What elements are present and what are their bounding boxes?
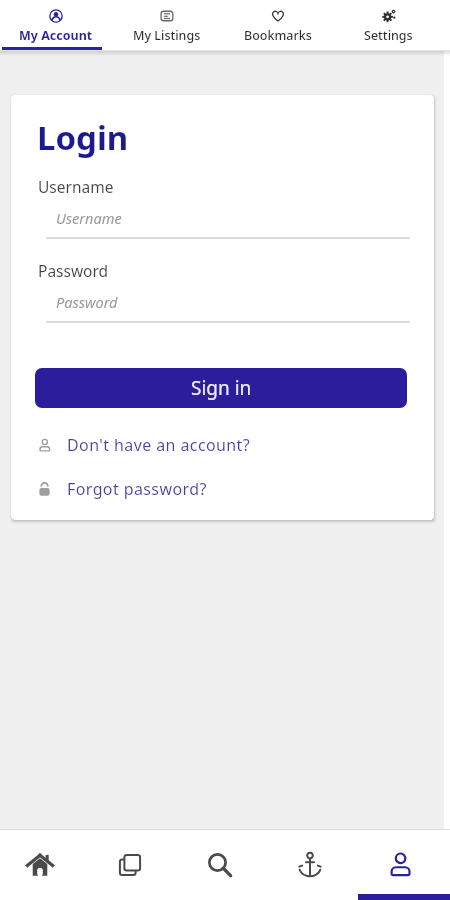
staticText: Bookmarks bbox=[244, 27, 312, 44]
staticText: Password bbox=[56, 292, 118, 312]
staticText: Don't have an account? bbox=[67, 434, 251, 456]
staticText: Username bbox=[38, 176, 114, 197]
button[interactable] bbox=[355, 830, 445, 900]
staticText: Sign in bbox=[191, 375, 252, 401]
button[interactable]: Forgot password? bbox=[37, 478, 207, 500]
button[interactable]: Settings bbox=[333, 0, 444, 51]
button[interactable]: Password bbox=[46, 282, 410, 323]
staticText: Settings bbox=[364, 27, 413, 44]
button[interactable] bbox=[0, 830, 85, 900]
button[interactable]: Username bbox=[46, 198, 410, 239]
button[interactable]: My Account bbox=[0, 0, 111, 51]
button[interactable]: Sign in bbox=[35, 368, 407, 408]
button[interactable]: Bookmarks bbox=[222, 0, 333, 51]
staticText: Password bbox=[38, 260, 109, 281]
button[interactable] bbox=[175, 830, 265, 900]
staticText: My Account bbox=[19, 27, 93, 44]
staticText: Username bbox=[56, 208, 122, 228]
button[interactable]: Don't have an account? bbox=[37, 434, 251, 456]
staticText: Forgot password? bbox=[67, 478, 207, 500]
staticText: Login bbox=[37, 115, 129, 160]
staticText: My Listings bbox=[133, 27, 201, 44]
button[interactable]: My Listings bbox=[111, 0, 222, 51]
button[interactable] bbox=[85, 830, 175, 900]
button[interactable] bbox=[265, 830, 355, 900]
